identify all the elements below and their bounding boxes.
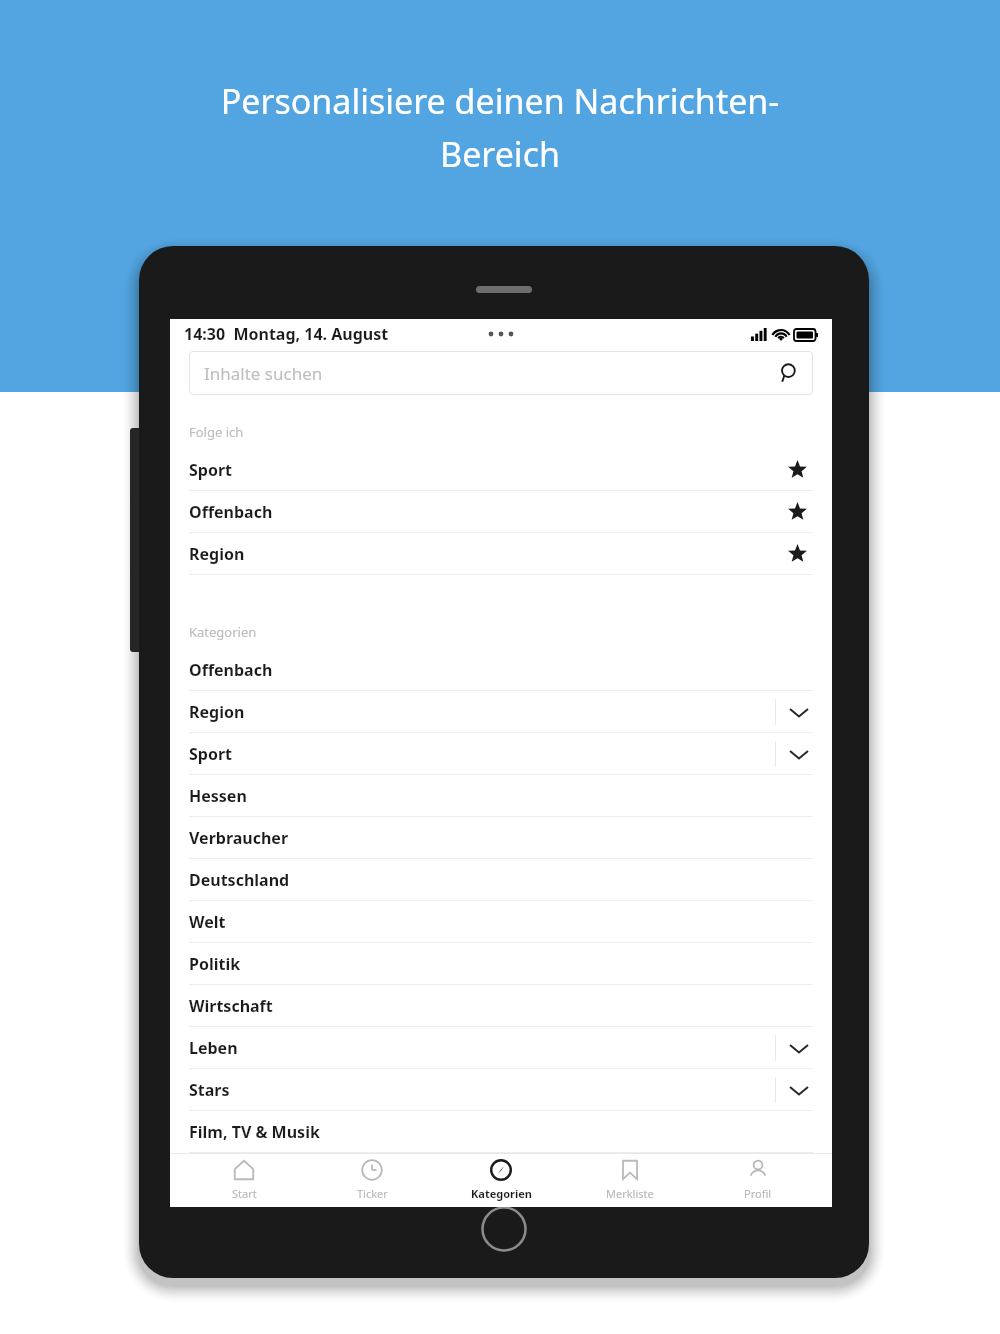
button[interactable]: Sport xyxy=(189,733,813,775)
button[interactable]: Offenbach xyxy=(189,649,813,691)
button[interactable]: Profil xyxy=(703,1153,813,1207)
other: Aufklappen xyxy=(790,1043,808,1054)
button[interactable]: Welt xyxy=(189,901,813,943)
staticText: Kategorien xyxy=(189,623,257,641)
staticText: Start xyxy=(232,1186,257,1201)
staticText: Welt xyxy=(189,911,226,933)
staticText: Stars xyxy=(189,1079,230,1101)
other: Favorit xyxy=(788,502,807,521)
other: Suchen xyxy=(779,363,799,383)
staticText: Personalisiere deinen Nachrichten- Berei… xyxy=(40,78,960,177)
button[interactable]: Merkliste xyxy=(575,1153,685,1207)
staticText: Merkliste xyxy=(606,1186,654,1201)
staticText: Profil xyxy=(744,1186,772,1201)
other: Favorit xyxy=(788,460,807,479)
staticText: Leben xyxy=(189,1037,238,1059)
button[interactable]: Wirtschaft xyxy=(189,985,813,1027)
button[interactable]: Leben xyxy=(189,1027,813,1069)
other: Aufklappen xyxy=(790,749,808,760)
staticText: Film, TV & Musik xyxy=(189,1121,320,1143)
button[interactable]: Politik xyxy=(189,943,813,985)
button[interactable]: Verbraucher xyxy=(189,817,813,859)
staticText: Inhalte suchen xyxy=(204,362,323,385)
button[interactable]: Deutschland xyxy=(189,859,813,901)
button[interactable]: Start xyxy=(189,1153,299,1207)
staticText: Hessen xyxy=(189,785,247,807)
staticText: Verbraucher xyxy=(189,827,289,849)
button[interactable]: Kategorien xyxy=(446,1153,556,1207)
staticText: Kategorien xyxy=(471,1186,532,1201)
staticText: Sport xyxy=(189,459,233,481)
other: Aufklappen xyxy=(790,707,808,718)
button[interactable]: Region xyxy=(189,691,813,733)
button[interactable]: Region xyxy=(189,533,813,575)
button[interactable]: Stars xyxy=(189,1069,813,1111)
other: Aufklappen xyxy=(790,1085,808,1096)
staticText: Region xyxy=(189,701,245,723)
button[interactable]: Offenbach xyxy=(189,491,813,533)
staticText: Sport xyxy=(189,743,233,765)
staticText: Folge ich xyxy=(189,423,244,441)
staticText: 14:30 Montag, 14. August xyxy=(184,323,389,345)
staticText: Ticker xyxy=(357,1186,388,1201)
staticText: Politik xyxy=(189,953,241,975)
other: Favorit xyxy=(788,544,807,563)
staticText: Deutschland xyxy=(189,869,290,891)
button[interactable]: Hessen xyxy=(189,775,813,817)
button[interactable]: Inhalte suchen xyxy=(189,351,813,395)
button[interactable]: Ticker xyxy=(317,1153,427,1207)
staticText: Region xyxy=(189,543,245,565)
staticText: Offenbach xyxy=(189,659,273,681)
staticText: Offenbach xyxy=(189,501,273,523)
button[interactable]: Film, TV & Musik xyxy=(189,1111,813,1153)
button[interactable]: Sport xyxy=(189,449,813,491)
staticText: Wirtschaft xyxy=(189,995,273,1017)
